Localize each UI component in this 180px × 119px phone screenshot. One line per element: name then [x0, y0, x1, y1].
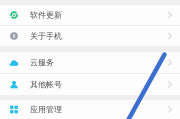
staticText: 其他帐号: [30, 80, 62, 89]
button[interactable]: 应用管理: [0, 100, 180, 119]
button[interactable]: 其他帐号: [0, 74, 180, 95]
button[interactable]: 软件更新: [0, 5, 180, 25]
staticText: 应用管理: [30, 105, 62, 114]
staticText: 云服务: [30, 58, 54, 67]
button[interactable]: 关于手机: [0, 26, 180, 46]
button[interactable]: 云服务: [0, 52, 180, 73]
staticText: 关于手机: [30, 31, 62, 41]
staticText: 软件更新: [30, 10, 62, 20]
